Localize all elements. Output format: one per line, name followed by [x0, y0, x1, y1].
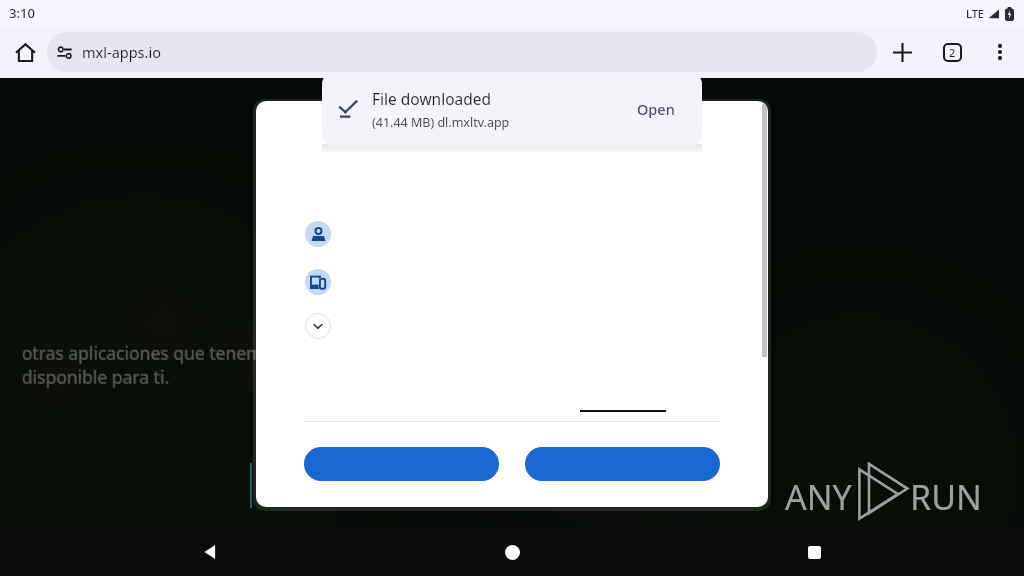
- staticText: (41.44 MB) dl.mxltv.app: [372, 114, 510, 131]
- button[interactable]: Open: [629, 91, 683, 127]
- button[interactable]: Secondary action: [525, 447, 720, 481]
- staticText: otras aplicaciones que tenemos disponibl…: [21, 340, 281, 388]
- button[interactable]: Switch tabs, 2 open: [935, 35, 969, 69]
- staticText: RUN: [910, 474, 982, 520]
- button[interactable]: Expand: [305, 313, 331, 339]
- staticText: File downloaded: [372, 88, 492, 109]
- button[interactable]: Home: [492, 532, 532, 572]
- button[interactable]: Home: [8, 35, 42, 69]
- button[interactable]: Devices: [305, 269, 331, 295]
- button[interactable]: Back: [190, 532, 230, 572]
- staticText: 2: [949, 45, 956, 60]
- staticText: ANY: [785, 474, 852, 520]
- button[interactable]: New tab: [885, 35, 919, 69]
- button[interactable]: Account: [305, 221, 331, 247]
- staticText: 3:10: [9, 4, 35, 22]
- staticText: Open: [637, 99, 675, 119]
- button[interactable]: mxl-apps.io: [47, 32, 877, 72]
- staticText: otras aplicaciones que tenemos disponibl…: [22, 341, 282, 389]
- staticText: mxl-apps.io: [82, 42, 161, 62]
- button[interactable]: More options: [983, 35, 1017, 69]
- button[interactable]: Recent apps: [794, 532, 834, 572]
- staticText: LTE: [966, 6, 984, 21]
- button[interactable]: Primary action: [304, 447, 499, 481]
